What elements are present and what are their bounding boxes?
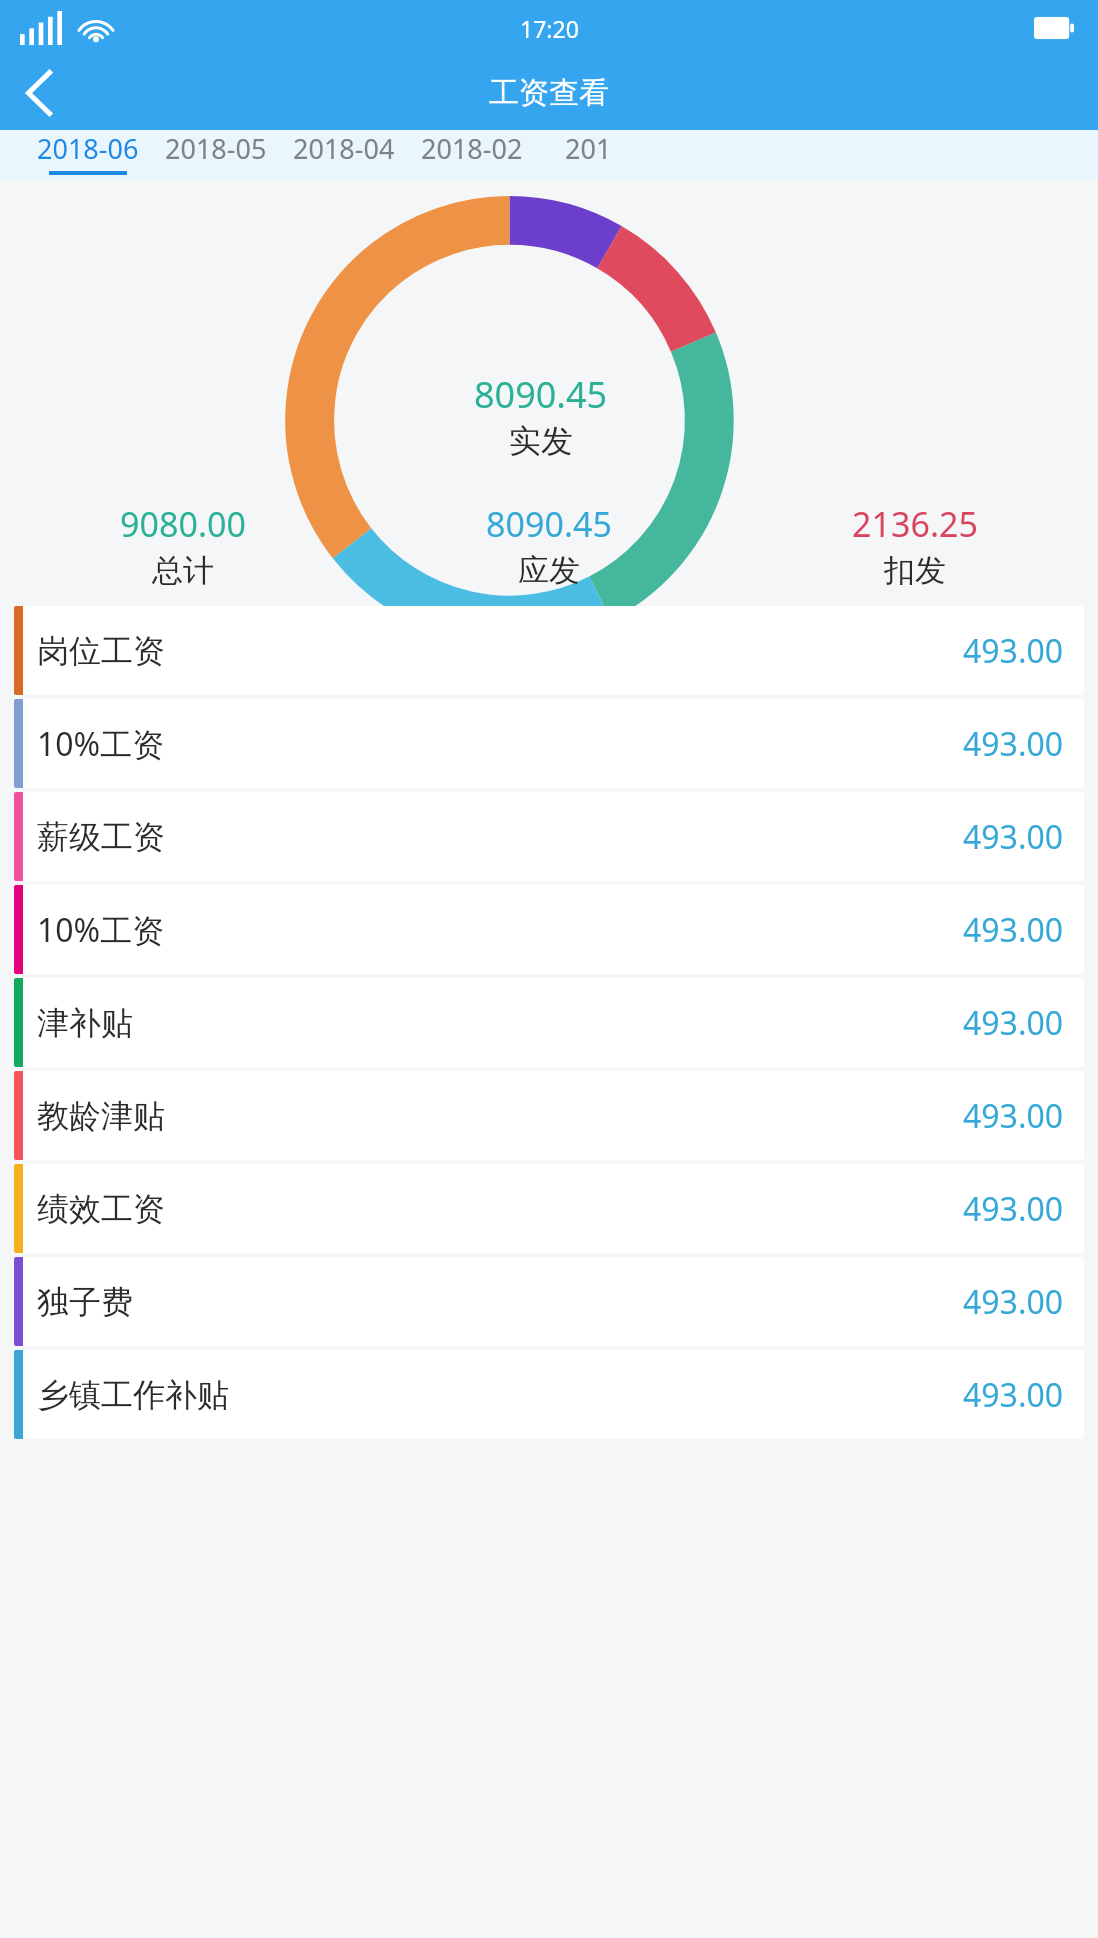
staticText: 10%工资 (37, 722, 963, 766)
button[interactable]: 2018-02 (408, 130, 536, 175)
staticText: 2018-02 (421, 130, 523, 167)
button[interactable]: 津补贴 (14, 978, 1084, 1067)
button[interactable]: 乡镇工作补贴 (14, 1350, 1084, 1439)
button[interactable]: 10%工资 (14, 699, 1084, 788)
staticText: 乡镇工作补贴 (37, 1375, 963, 1415)
staticText: 493.00 (963, 1094, 1064, 1138)
staticText: 教龄津贴 (37, 1096, 963, 1136)
staticText: 8090.45 (486, 501, 612, 547)
staticText: 工资查看 (489, 74, 609, 112)
button[interactable]: 201 (536, 130, 640, 175)
staticText: 493.00 (963, 629, 1064, 673)
staticText: 绩效工资 (37, 1189, 963, 1229)
staticText: 薪级工资 (37, 817, 963, 857)
staticText: 独子费 (37, 1282, 963, 1322)
button[interactable]: 独子费 (14, 1257, 1084, 1346)
staticText: 岗位工资 (37, 631, 963, 671)
staticText: 201 (565, 130, 612, 167)
button[interactable]: 2136.25 (732, 501, 1098, 590)
staticText: 493.00 (963, 1373, 1064, 1417)
staticText: 17:20 (520, 13, 579, 44)
staticText: 493.00 (963, 1001, 1064, 1045)
staticText: 493.00 (963, 1187, 1064, 1231)
staticText: 9080.00 (120, 501, 246, 547)
staticText: 8090.45 (474, 370, 608, 419)
staticText: 10%工资 (37, 908, 963, 952)
button[interactable]: 岗位工资 (14, 606, 1084, 695)
staticText: 493.00 (963, 815, 1064, 859)
button[interactable]: Back (0, 56, 78, 130)
staticText: 实发 (509, 421, 573, 461)
staticText: 2018-05 (165, 130, 267, 167)
staticText: 493.00 (963, 1280, 1064, 1324)
staticText: 493.00 (963, 908, 1064, 952)
staticText: 2136.25 (852, 501, 978, 547)
button[interactable]: 10%工资 (14, 885, 1084, 974)
button[interactable]: 绩效工资 (14, 1164, 1084, 1253)
staticText: 2018-04 (293, 130, 395, 167)
staticText: 493.00 (963, 722, 1064, 766)
staticText: 应发 (518, 551, 580, 590)
button[interactable]: 8090.45 (366, 501, 732, 590)
staticText: 扣发 (884, 551, 946, 590)
button[interactable]: 2018-05 (152, 130, 280, 175)
staticText: 2018-06 (37, 130, 139, 167)
staticText: 总计 (152, 551, 214, 590)
button[interactable]: 2018-06 (24, 130, 152, 175)
button[interactable]: 薪级工资 (14, 792, 1084, 881)
staticText: 津补贴 (37, 1003, 963, 1043)
button[interactable]: 9080.00 (0, 501, 366, 590)
button[interactable]: 2018-04 (280, 130, 408, 175)
button[interactable]: 教龄津贴 (14, 1071, 1084, 1160)
